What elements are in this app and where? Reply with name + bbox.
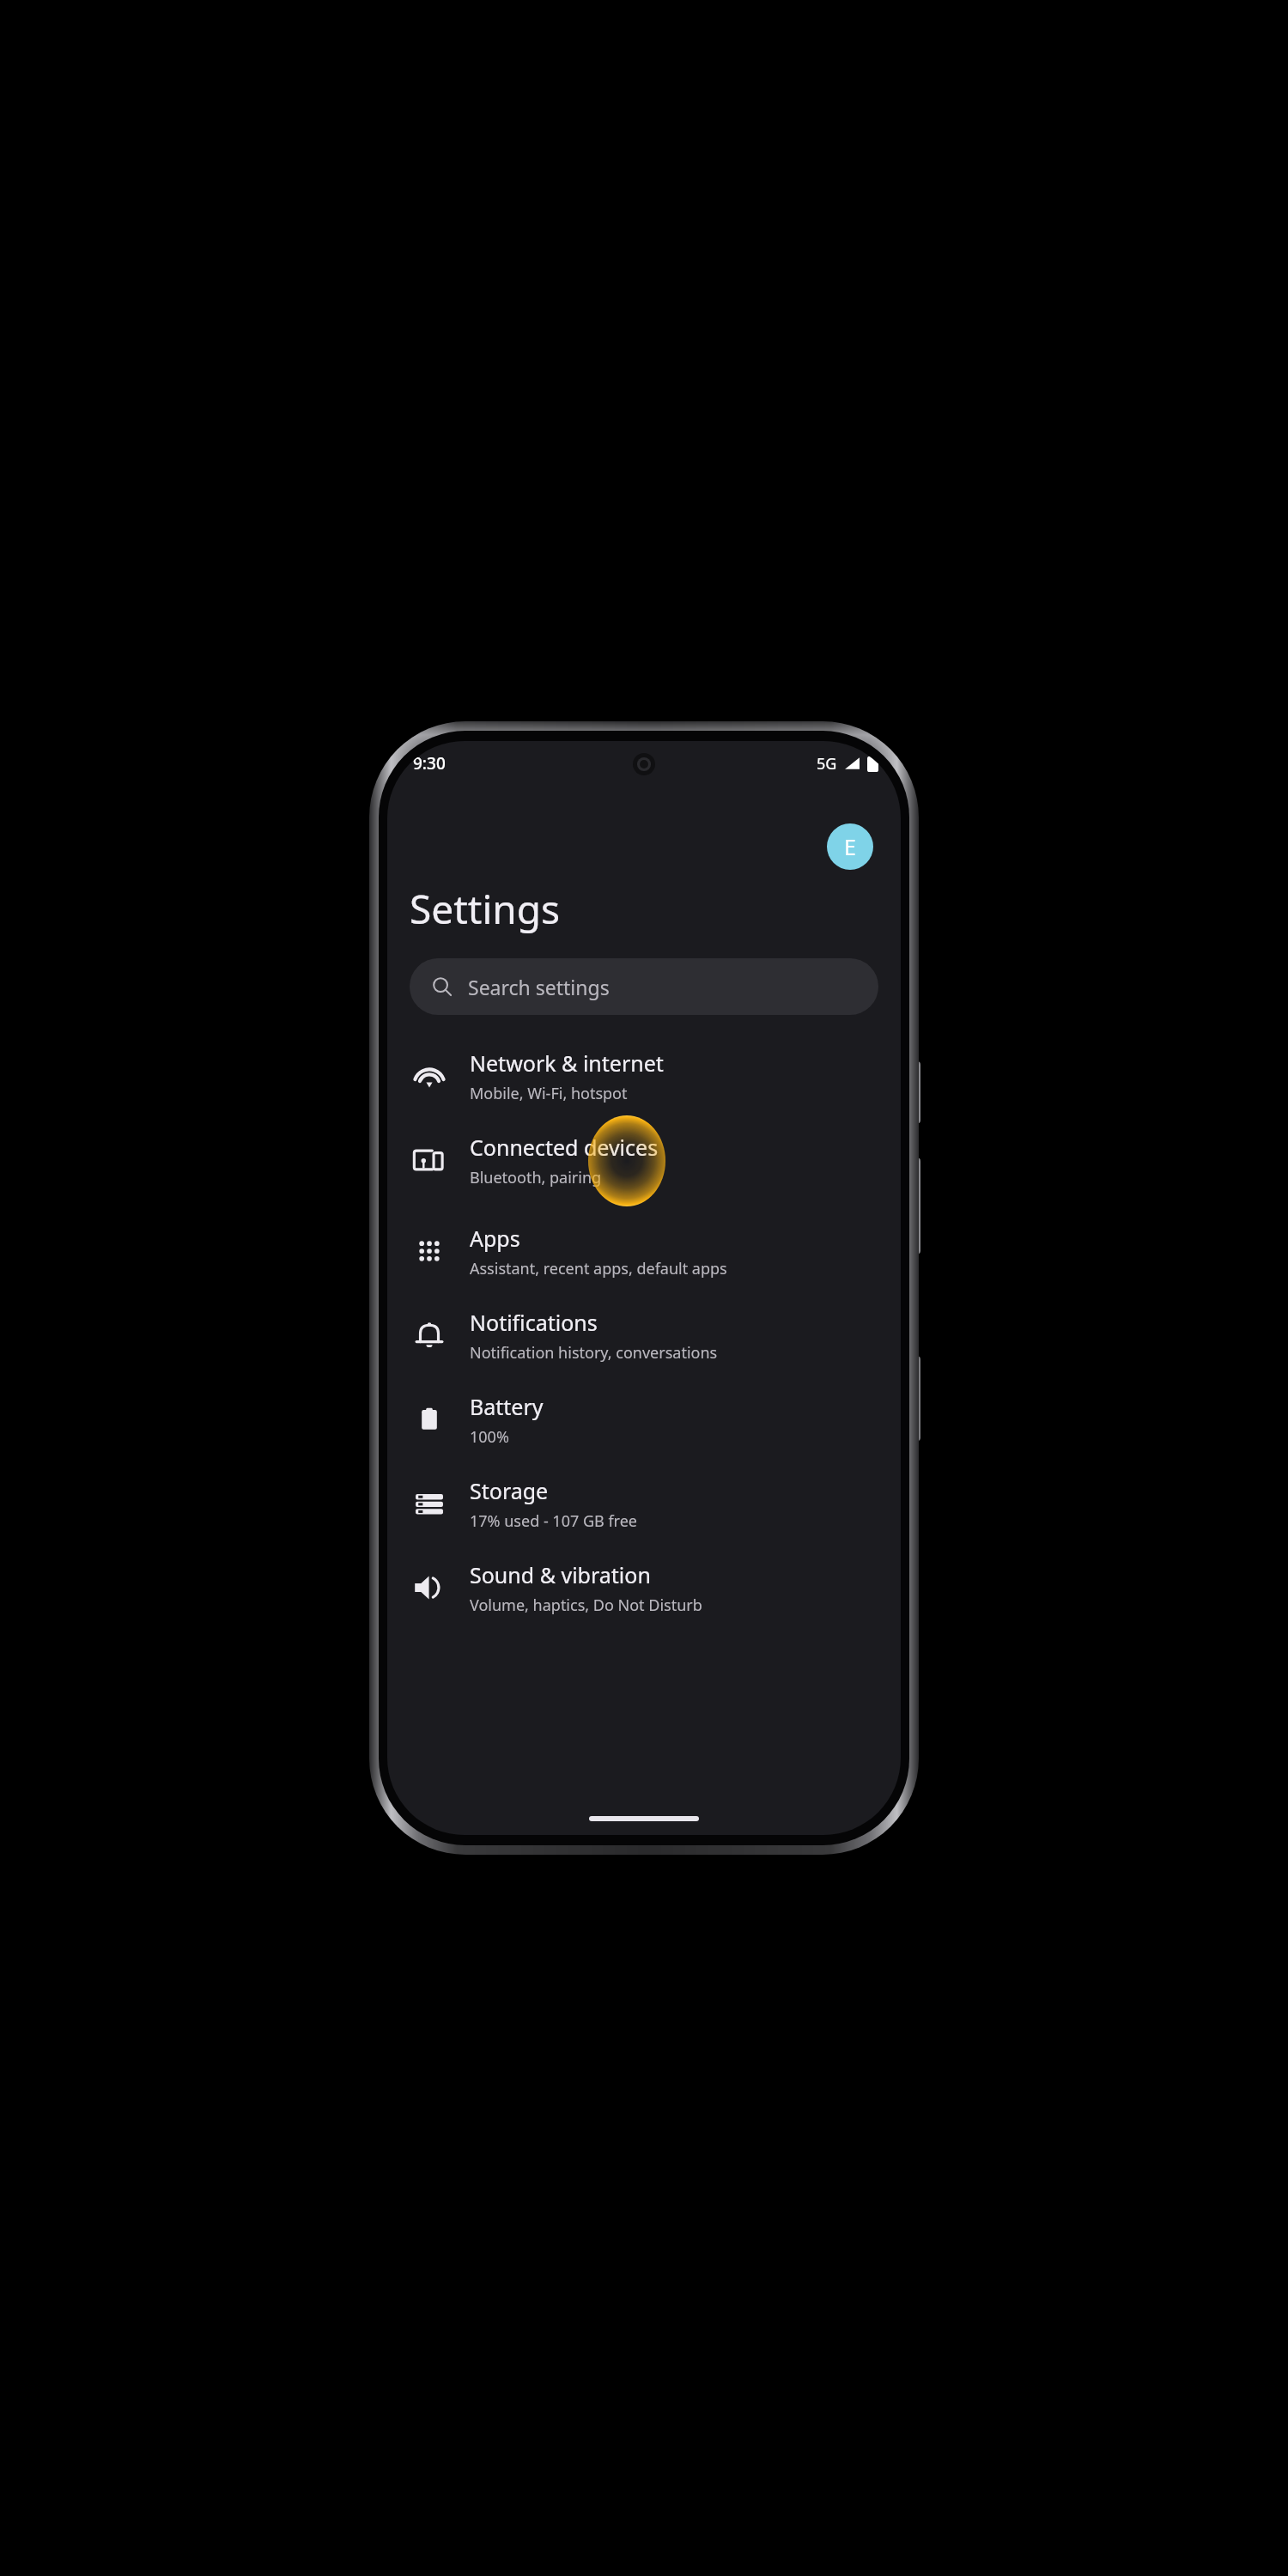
staticText: 9:30 (413, 752, 446, 775)
staticText: Notifications (470, 1308, 598, 1337)
staticText: Storage (470, 1476, 549, 1505)
staticText: 5G (817, 753, 837, 775)
staticText: 100% (470, 1426, 509, 1448)
staticText: Settings (410, 882, 561, 936)
staticText: Sound & vibration (470, 1560, 651, 1589)
staticText: 17% used - 107 GB free (470, 1510, 637, 1532)
button[interactable]: Search settings (410, 958, 878, 1015)
staticText: Connected devices (470, 1133, 659, 1162)
button[interactable]: Notifications (387, 1293, 901, 1377)
button[interactable]: Sound & vibration (387, 1546, 901, 1630)
button[interactable]: Account (827, 823, 873, 870)
staticText: E (844, 832, 856, 861)
button[interactable]: Connected devices (387, 1118, 901, 1202)
staticText: Mobile, Wi-Fi, hotspot (470, 1083, 628, 1104)
staticText: Apps (470, 1224, 520, 1253)
button[interactable]: Network & internet (387, 1034, 901, 1118)
button[interactable]: Apps (387, 1209, 901, 1293)
staticText: Assistant, recent apps, default apps (470, 1258, 727, 1279)
staticText: Bluetooth, pairing (470, 1167, 602, 1188)
staticText: Volume, haptics, Do Not Disturb (470, 1595, 702, 1616)
staticText: Search settings (468, 974, 610, 1000)
button[interactable]: Battery (387, 1377, 901, 1461)
staticText: Notification history, conversations (470, 1342, 718, 1364)
button[interactable]: Storage (387, 1461, 901, 1546)
staticText: Battery (470, 1392, 544, 1421)
staticText: Network & internet (470, 1048, 664, 1078)
